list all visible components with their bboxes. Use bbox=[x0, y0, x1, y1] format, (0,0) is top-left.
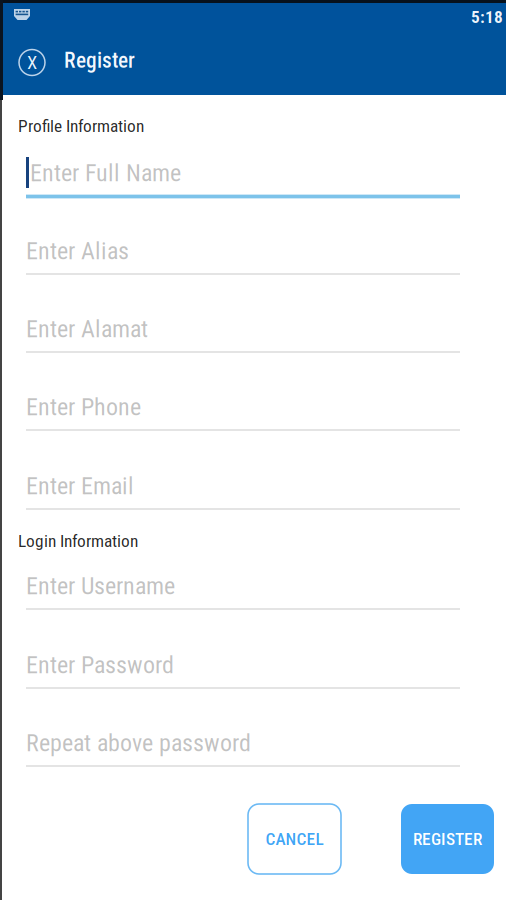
staticText: Register bbox=[64, 48, 135, 73]
staticText: Profile Information bbox=[18, 116, 144, 136]
button[interactable]: Enter Full Name bbox=[26, 145, 460, 215]
staticText: Enter Username bbox=[26, 572, 175, 600]
staticText: REGISTER bbox=[413, 829, 482, 849]
button[interactable]: Repeat above password bbox=[26, 715, 460, 785]
staticText: Enter Alias bbox=[26, 237, 129, 265]
button[interactable]: CANCEL bbox=[248, 804, 341, 874]
staticText: Enter Full Name bbox=[30, 159, 181, 187]
button[interactable]: Enter Password bbox=[26, 637, 460, 707]
staticText: Repeat above password bbox=[26, 729, 251, 757]
button[interactable]: Enter Email bbox=[26, 458, 460, 528]
button[interactable]: Close bbox=[0, 30, 66, 95]
staticText: CANCEL bbox=[265, 829, 323, 849]
button[interactable]: Enter Username bbox=[26, 558, 460, 628]
staticText: Enter Password bbox=[26, 651, 174, 679]
staticText: Login Information bbox=[18, 531, 138, 551]
button[interactable]: Enter Alamat bbox=[26, 301, 460, 371]
staticText: 5:18 bbox=[471, 7, 503, 27]
button[interactable]: REGISTER bbox=[401, 804, 494, 874]
button[interactable]: Enter Alias bbox=[26, 223, 460, 293]
button[interactable]: Enter Phone bbox=[26, 379, 460, 449]
staticText: Enter Phone bbox=[26, 393, 141, 421]
staticText: X bbox=[27, 52, 37, 73]
staticText: Enter Alamat bbox=[26, 315, 148, 343]
staticText: Enter Email bbox=[26, 472, 134, 500]
